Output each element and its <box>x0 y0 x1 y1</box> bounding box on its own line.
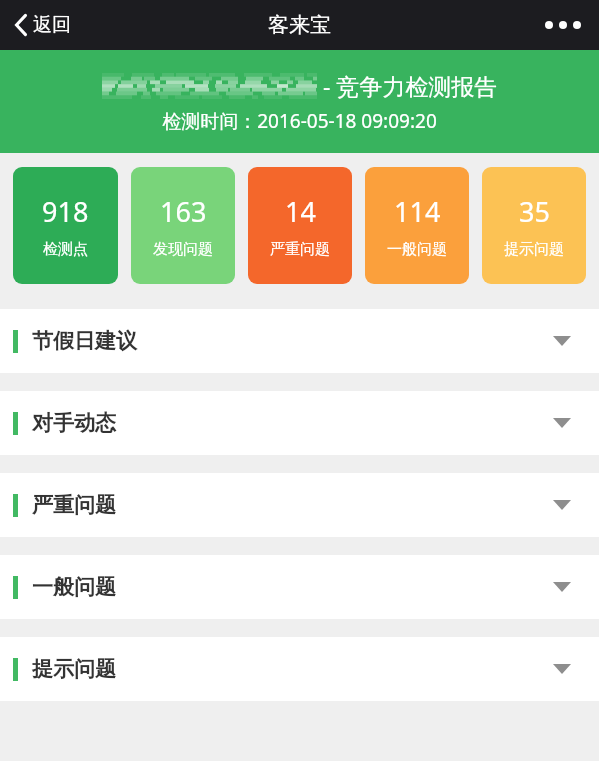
staticText: 对手动态 <box>32 410 116 436</box>
staticText: 检测时间：2016-05-18 09:09:20 <box>162 108 437 134</box>
staticText: 发现问题 <box>153 240 213 259</box>
staticText: - 竞争力检测报告 <box>317 70 498 101</box>
button[interactable]: 918 <box>13 167 118 284</box>
button[interactable]: 14 <box>248 167 352 284</box>
staticText: 一般问题 <box>32 574 116 600</box>
staticText: 严重问题 <box>32 492 116 518</box>
staticText: 114 <box>394 193 441 230</box>
button[interactable]: 163 <box>131 167 235 284</box>
button[interactable]: 返回 <box>0 7 85 43</box>
staticText: 918 <box>42 193 89 230</box>
staticText: 14 <box>285 193 316 230</box>
button[interactable]: 114 <box>365 167 469 284</box>
staticText: 35 <box>519 193 550 230</box>
staticText: 提示问题 <box>504 240 564 259</box>
staticText: 提示问题 <box>32 656 116 682</box>
staticText: 节假日建议 <box>32 328 137 354</box>
staticText: 163 <box>160 193 207 230</box>
button[interactable]: 严重问题 <box>0 473 599 537</box>
button[interactable]: 一般问题 <box>0 555 599 619</box>
button[interactable]: 35 <box>482 167 586 284</box>
staticText: 检测点 <box>43 240 88 259</box>
button[interactable]: 对手动态 <box>0 391 599 455</box>
button[interactable]: 节假日建议 <box>0 309 599 373</box>
button[interactable]: 提示问题 <box>0 637 599 701</box>
button[interactable]: More options <box>527 7 599 43</box>
staticText: 客来宝 <box>268 12 331 38</box>
staticText: 返回 <box>33 13 71 37</box>
staticText: 一般问题 <box>387 240 447 259</box>
staticText: 严重问题 <box>270 240 330 259</box>
